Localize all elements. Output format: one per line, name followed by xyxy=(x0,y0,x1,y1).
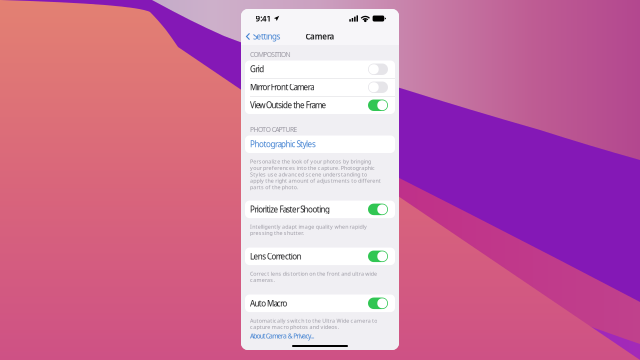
staticText: Automatically switch to the Ultra Wide c… xyxy=(250,317,377,331)
staticText: Intelligently adapt image quality when r… xyxy=(250,223,367,237)
button[interactable]: On xyxy=(368,298,388,309)
button[interactable]: Mirror Front Camera xyxy=(245,78,395,96)
button[interactable]: Auto Macro xyxy=(245,295,395,312)
staticText: Lens Correction xyxy=(250,251,302,262)
button[interactable]: View Outside the Frame xyxy=(245,96,395,114)
button[interactable]: On xyxy=(368,251,388,262)
button[interactable]: On xyxy=(368,99,388,111)
button[interactable]: Prioritize Faster Shooting xyxy=(245,201,395,218)
staticText: Personalize the look of your photos by b… xyxy=(250,158,381,191)
staticText: PHOTO CAPTURE xyxy=(250,125,297,134)
staticText: Auto Macro xyxy=(250,298,288,309)
button[interactable]: Off xyxy=(368,81,388,93)
button[interactable]: Grid xyxy=(245,60,395,78)
button[interactable]: Lens Correction xyxy=(245,248,395,265)
staticText: 9:41 xyxy=(255,13,272,24)
staticText: COMPOSITION xyxy=(250,50,290,59)
button[interactable]: Off xyxy=(368,63,388,75)
button[interactable]: Settings xyxy=(241,28,280,45)
button[interactable]: Photographic Styles xyxy=(245,135,395,153)
staticText: View Outside the Frame xyxy=(250,100,326,110)
staticText: Settings xyxy=(253,31,280,42)
button[interactable]: On xyxy=(368,204,388,215)
staticText: Mirror Front Camera xyxy=(250,82,314,92)
staticText: Camera xyxy=(305,31,334,42)
staticText: Correct lens distortion on the front and… xyxy=(250,270,377,284)
staticText: Prioritize Faster Shooting xyxy=(250,204,330,215)
staticText: Photographic Styles xyxy=(250,139,316,149)
button[interactable]: About Camera & Privacy... xyxy=(241,330,399,341)
staticText: About Camera & Privacy... xyxy=(250,332,315,340)
staticText: Grid xyxy=(250,64,264,74)
